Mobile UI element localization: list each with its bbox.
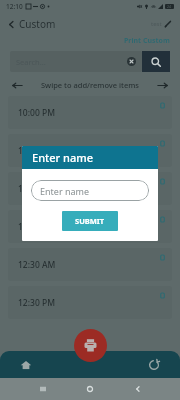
button[interactable]: Clear search [127,57,136,66]
button[interactable]: 12:00 PM [8,172,172,205]
button[interactable]: Search [142,51,170,72]
button[interactable]: Reset [144,355,164,375]
button[interactable]: Home [16,355,36,375]
staticText: Enter name [32,150,93,165]
button[interactable]: SUBMIT [62,211,118,231]
button[interactable]: Enter name [31,180,149,201]
staticText: 12:00 PM [18,221,55,233]
staticText: 12:10 [6,2,23,11]
button[interactable]: 12:30 PM [8,286,172,319]
button[interactable]: Next [155,78,170,93]
button[interactable]: Previous [10,78,25,93]
button[interactable]: Back [5,15,58,33]
staticText: Enter name [40,185,90,197]
staticText: Swipe to add/remove items [25,80,155,90]
staticText: 10:30 AM [18,145,56,157]
button[interactable]: 10:00 PM [8,96,172,129]
button[interactable]: 12:30 AM [8,248,172,281]
other: Edit name [164,20,172,28]
button[interactable]: test [149,18,174,30]
button[interactable]: 12:00 PM [8,210,172,243]
staticText: 12:30 AM [18,259,56,271]
staticText: test [151,20,162,28]
staticText: Custom [19,17,56,31]
other: Back [7,20,16,29]
button[interactable]: Print Custom [122,35,172,47]
staticText: 24 [167,4,172,9]
staticText: 10:00 PM [18,107,55,119]
staticText: Print Custom [124,36,170,46]
staticText: 12:30 PM [18,297,55,309]
staticText: 12:00 PM [18,183,55,195]
button[interactable]: Search... [10,51,142,72]
staticText: SUBMIT [75,216,105,226]
button[interactable]: 10:30 AM [8,134,172,167]
button[interactable]: Print [74,329,107,362]
